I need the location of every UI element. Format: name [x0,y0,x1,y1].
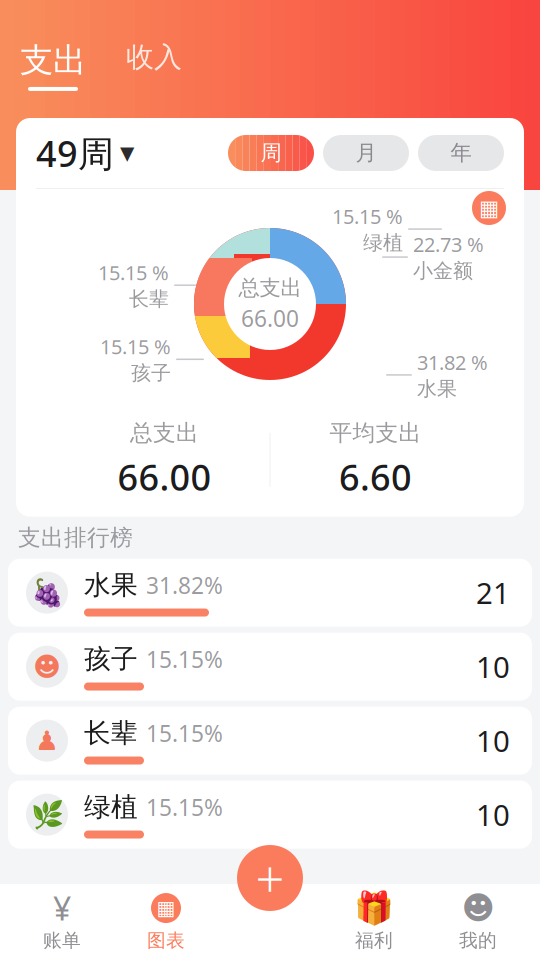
staticText: 49周 [36,129,114,177]
staticText: 10 [476,721,510,760]
button[interactable]: 🍇 [8,559,532,627]
staticText: + [255,844,284,912]
staticText: 66.00 [241,303,299,333]
staticText: 月 [355,140,376,166]
staticText: 长辈 [84,717,138,750]
button[interactable]: Chart options [472,191,506,225]
staticText: 支出排行榜 [18,524,133,551]
button[interactable]: ▦ [114,889,218,955]
button[interactable]: 周 [228,135,314,171]
staticText: 21 [476,573,510,612]
staticText: ☻ [461,890,494,926]
staticText: 15.15% [146,792,223,822]
staticText: 孩子 [131,361,171,385]
button[interactable]: ☻ [8,633,532,701]
staticText: 总支出 [130,419,199,447]
button[interactable]: ♟ [8,707,532,775]
staticText: 福利 [355,929,393,952]
staticText: 绿植 [84,791,138,824]
staticText: ☻ [33,651,61,682]
staticText: 账单 [43,929,81,952]
button[interactable]: 49周 [36,129,134,177]
staticText: 31.82% [146,570,223,600]
staticText: 周 [260,140,281,166]
button[interactable]: 🌿 [8,781,532,849]
staticText: 水果 [417,376,457,401]
staticText: 🌿 [30,799,63,830]
staticText: 31.82 % [417,349,488,375]
staticText: 6.60 [339,453,412,501]
button[interactable]: ☻ [426,889,530,955]
button[interactable]: 月 [323,135,409,171]
staticText: 总支出 [238,275,301,301]
staticText: ▦ [479,196,499,220]
staticText: 10 [476,647,510,686]
staticText: 15.15 % [100,333,171,360]
staticText: ▦ [156,897,175,919]
staticText: 15.15 % [98,259,169,286]
staticText: 🎁 [354,890,394,926]
staticText: 年 [450,140,471,166]
staticText: 绿植 [363,231,403,255]
button[interactable]: 支出 [20,40,86,91]
staticText: ¥ [53,887,71,929]
staticText: 🍇 [30,577,63,608]
staticText: 22.73 % [413,231,484,258]
button[interactable]: 年 [418,135,504,171]
staticText: 66.00 [117,453,211,501]
staticText: 15.15% [146,644,223,674]
staticText: 我的 [459,929,497,952]
staticText: 长辈 [129,287,169,311]
button[interactable]: 🎁 [322,889,426,955]
staticText: 15.15 % [332,203,403,230]
staticText: 10 [476,795,510,834]
staticText: 图表 [147,929,185,952]
staticText: 水果 [84,569,138,602]
staticText: 支出 [20,40,86,81]
button[interactable]: ¥ [10,889,114,955]
staticText: 15.15% [146,718,223,748]
button[interactable]: 收入 [126,40,182,84]
staticText: 收入 [126,40,182,74]
button[interactable]: Add record [237,845,303,911]
staticText: 孩子 [84,643,138,676]
staticText: 小金额 [413,259,473,283]
staticText: ▼ [120,142,134,164]
staticText: ♟ [35,725,59,756]
staticText: 平均支出 [329,419,421,447]
